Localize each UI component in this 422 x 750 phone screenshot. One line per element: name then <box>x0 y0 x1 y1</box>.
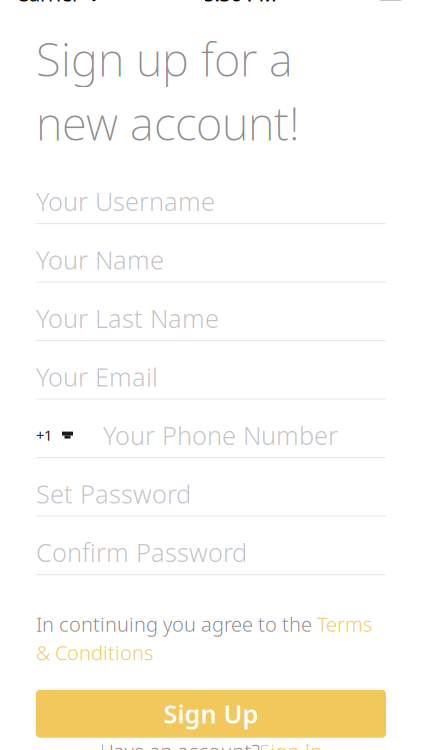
staticText: Your Email <box>36 360 158 393</box>
button[interactable]: Your Email <box>36 355 386 413</box>
staticText: Terms <box>317 611 372 637</box>
staticText: Have an account? <box>99 738 259 750</box>
staticText: Carrier <box>16 0 80 7</box>
staticText: Your Name <box>36 243 164 276</box>
button[interactable]: Your Username <box>36 179 386 238</box>
staticText: Sign In <box>259 738 322 750</box>
staticText: 5:36 PM <box>203 0 276 7</box>
button[interactable]: Sign Up <box>36 690 386 738</box>
button[interactable]: Terms <box>317 611 372 637</box>
staticText: Set Password <box>36 477 191 510</box>
staticText: Sign up for a <box>36 29 293 89</box>
button[interactable]: Confirm Password <box>36 530 386 589</box>
button[interactable]: Set Password <box>36 472 386 530</box>
button[interactable]: Country code +1, phone number <box>36 413 386 472</box>
staticText: Sign Up <box>163 697 258 730</box>
staticText: +1 <box>36 425 52 445</box>
staticText: Your Username <box>36 184 215 218</box>
staticText: Your Last Name <box>36 301 219 335</box>
staticText: new account! <box>36 93 300 153</box>
button[interactable]: & Conditions <box>36 639 153 666</box>
button[interactable]: Your Last Name <box>36 296 386 355</box>
staticText: & Conditions <box>36 639 153 666</box>
staticText: Your Phone Number <box>103 418 338 452</box>
button[interactable]: Your Name <box>36 238 386 296</box>
staticText: Confirm Password <box>36 535 247 569</box>
button[interactable]: Sign In <box>259 738 322 750</box>
staticText: In continuing you agree to the <box>36 611 317 637</box>
